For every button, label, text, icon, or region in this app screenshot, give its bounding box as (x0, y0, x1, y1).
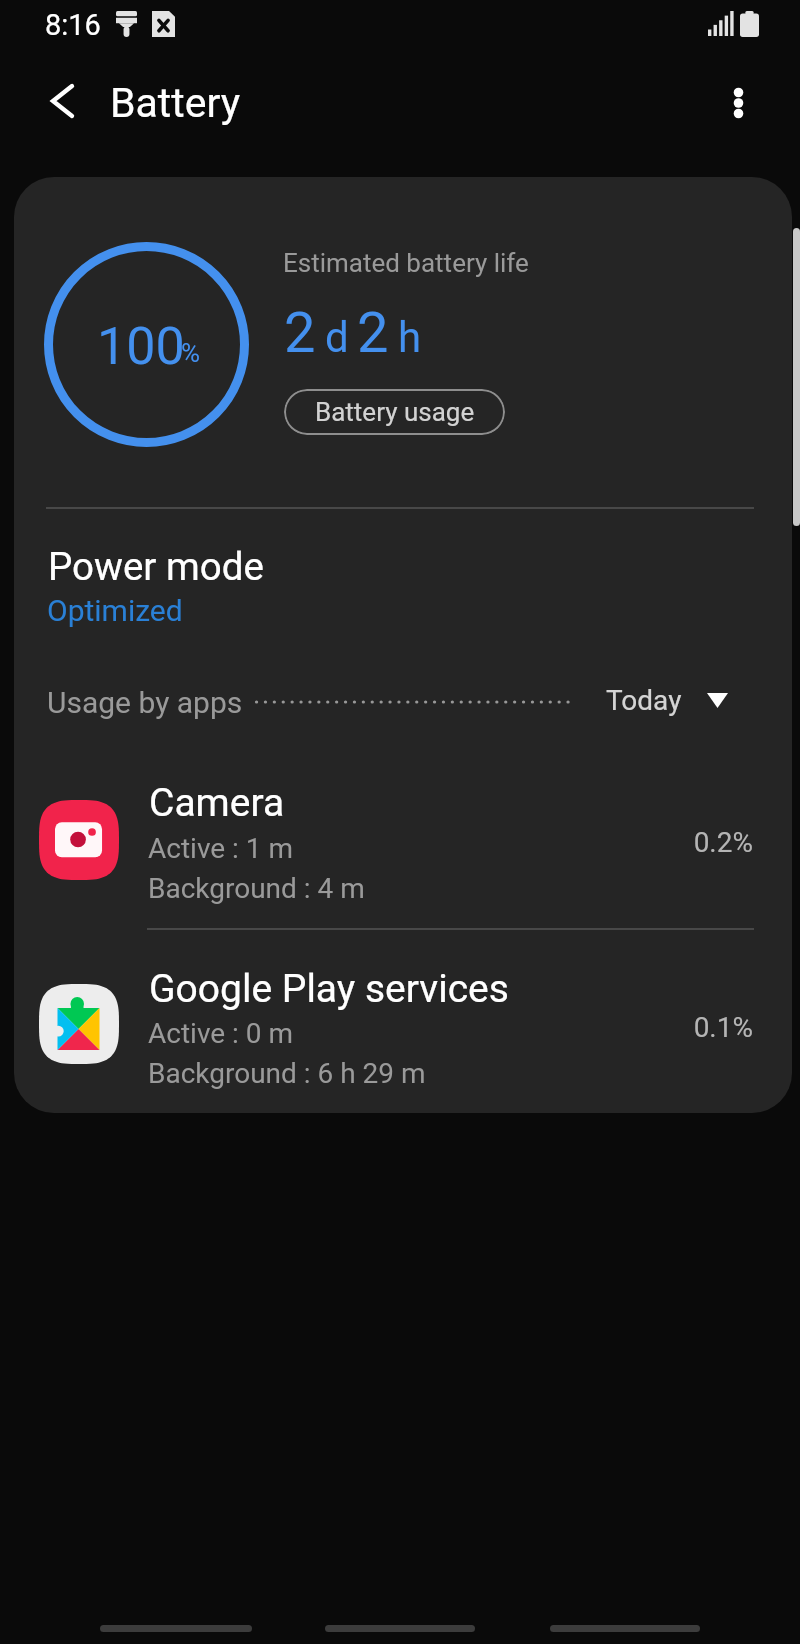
staticText: % (181, 338, 201, 368)
staticText: Battery usage (315, 397, 475, 427)
staticText: 0.1% (600, 1011, 753, 1044)
staticText: 2 (284, 300, 316, 366)
staticText: Active : 0 m (148, 1017, 294, 1050)
staticText: d (325, 313, 349, 362)
button[interactable]: Home (325, 1625, 475, 1632)
button[interactable]: Today, change period (598, 682, 738, 726)
button[interactable] (14, 948, 784, 1114)
button[interactable] (14, 525, 784, 640)
button[interactable]: Battery usage (284, 389, 505, 435)
staticText: Background : 6 h 29 m (148, 1057, 426, 1090)
staticText: Usage by apps (47, 685, 243, 720)
staticText: Google Play services (149, 966, 509, 1012)
button[interactable]: Back (550, 1625, 700, 1632)
staticText: 2 (357, 300, 389, 366)
staticText: Today (606, 684, 682, 717)
staticText: Active : 1 m (148, 832, 294, 865)
staticText: Camera (149, 780, 285, 826)
staticText: Power mode (48, 544, 264, 589)
staticText: Optimized (47, 593, 183, 628)
button[interactable]: More options (709, 73, 769, 133)
button[interactable] (14, 762, 784, 928)
staticText: Battery (110, 79, 241, 127)
button[interactable]: Navigate back (22, 71, 82, 131)
staticText: 100 (97, 316, 185, 377)
button[interactable]: Recent apps (100, 1625, 252, 1632)
staticText: 0.2% (600, 826, 753, 859)
staticText: 8:16 (45, 8, 101, 42)
staticText: h (398, 313, 422, 362)
staticText: Estimated battery life (283, 248, 529, 278)
staticText: Background : 4 m (148, 872, 365, 905)
